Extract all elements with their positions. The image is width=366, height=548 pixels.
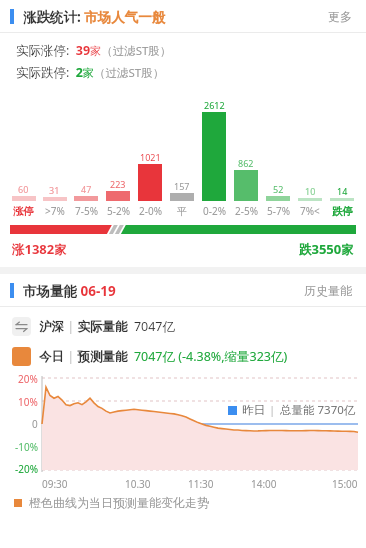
- staticText: 7-5%: [75, 204, 98, 218]
- staticText: 5-7%: [267, 204, 290, 218]
- staticText: -20%: [15, 462, 38, 476]
- staticText: 涨1382家: [12, 240, 67, 258]
- staticText: 实际跌停: 2家（过滤ST股）: [16, 64, 165, 81]
- staticText: 47: [81, 183, 92, 195]
- staticText: 20%: [18, 372, 38, 386]
- staticText: 11:30: [188, 477, 214, 491]
- staticText: 市场量能 06-19: [23, 282, 116, 300]
- staticText: 历史量能: [304, 283, 352, 298]
- staticText: >7%: [45, 204, 65, 218]
- staticText: 7%<: [300, 204, 320, 218]
- staticText: 今日 | 预测量能 7047亿 (-4.38%,缩量323亿): [39, 348, 288, 365]
- staticText: 5-2%: [107, 204, 130, 218]
- staticText: 10: [305, 185, 316, 197]
- staticText: 总量能 7370亿: [280, 402, 356, 418]
- staticText: 52: [273, 183, 284, 195]
- button[interactable]: 更多: [326, 5, 354, 28]
- staticText: 0: [32, 417, 38, 431]
- staticText: 昨日: [242, 403, 265, 417]
- staticText: 157: [174, 180, 190, 192]
- button[interactable]: 历史量能: [302, 279, 354, 302]
- staticText: 沪深 | 实际量能 7047亿: [39, 318, 175, 335]
- staticText: 09:30: [42, 477, 68, 491]
- staticText: 实际涨停: 39家（过滤ST股）: [16, 42, 172, 59]
- staticText: 涨跌统计: 市场人气一般: [23, 8, 166, 26]
- button[interactable]: 切换市场: [0, 315, 366, 338]
- staticText: 跌3550家: [299, 240, 354, 258]
- staticText: 2612: [204, 99, 225, 111]
- staticText: 10%: [18, 395, 38, 409]
- staticText: 14:00: [251, 477, 277, 491]
- staticText: |: [269, 402, 276, 418]
- staticText: -10%: [15, 440, 38, 454]
- staticText: 862: [238, 157, 254, 169]
- staticText: 14: [337, 185, 348, 197]
- staticText: 涨停: [13, 205, 34, 218]
- staticText: 223: [110, 178, 126, 190]
- staticText: 跌停: [332, 205, 353, 218]
- staticText: 2-0%: [139, 204, 162, 218]
- staticText: 31: [49, 184, 60, 196]
- staticText: 15:00: [332, 477, 358, 491]
- staticText: 0-2%: [203, 204, 226, 218]
- staticText: 平: [177, 205, 187, 218]
- staticText: 橙色曲线为当日预测量能变化走势: [29, 495, 209, 510]
- staticText: 更多: [328, 9, 352, 24]
- other: 切换市场: [12, 317, 31, 336]
- staticText: 60: [18, 183, 29, 195]
- staticText: 1021: [140, 151, 161, 163]
- staticText: 2-5%: [235, 204, 258, 218]
- staticText: 10.30: [125, 477, 151, 491]
